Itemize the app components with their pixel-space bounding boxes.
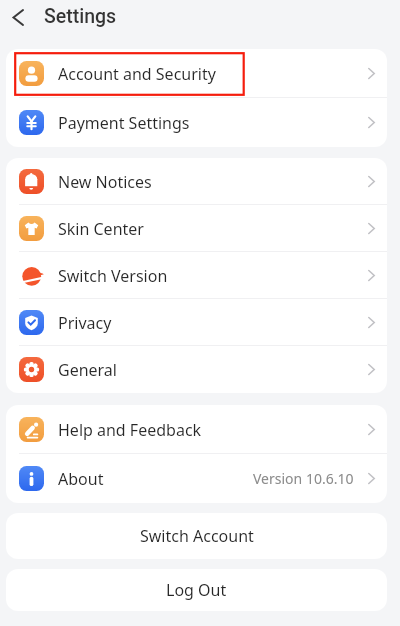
button[interactable]: Log Out [6,569,387,611]
button[interactable]: Switch Version [6,252,387,299]
staticText: Skin Center [58,218,144,240]
button[interactable]: New Notices [6,158,387,205]
staticText: Payment Settings [58,112,190,134]
button[interactable] [12,4,38,30]
button[interactable]: About [6,454,387,503]
staticText: Account and Security [58,63,216,85]
staticText: Privacy [58,312,112,334]
staticText: General [58,359,117,381]
button[interactable]: General [6,346,387,393]
staticText: Switch Account [140,525,254,547]
button[interactable]: Payment Settings [6,98,387,147]
staticText: Log Out [166,579,227,601]
staticText: About [58,468,104,490]
button[interactable]: Skin Center [6,205,387,252]
button[interactable]: Switch Account [6,513,387,559]
staticText: Version 10.6.10 [253,469,354,488]
button[interactable]: Privacy [6,299,387,346]
button[interactable]: Account and Security [6,49,387,98]
button[interactable]: Help and Feedback [6,405,387,454]
staticText: Settings [44,5,117,28]
staticText: Help and Feedback [58,419,202,441]
staticText: Switch Version [58,265,168,287]
staticText: New Notices [58,171,152,193]
